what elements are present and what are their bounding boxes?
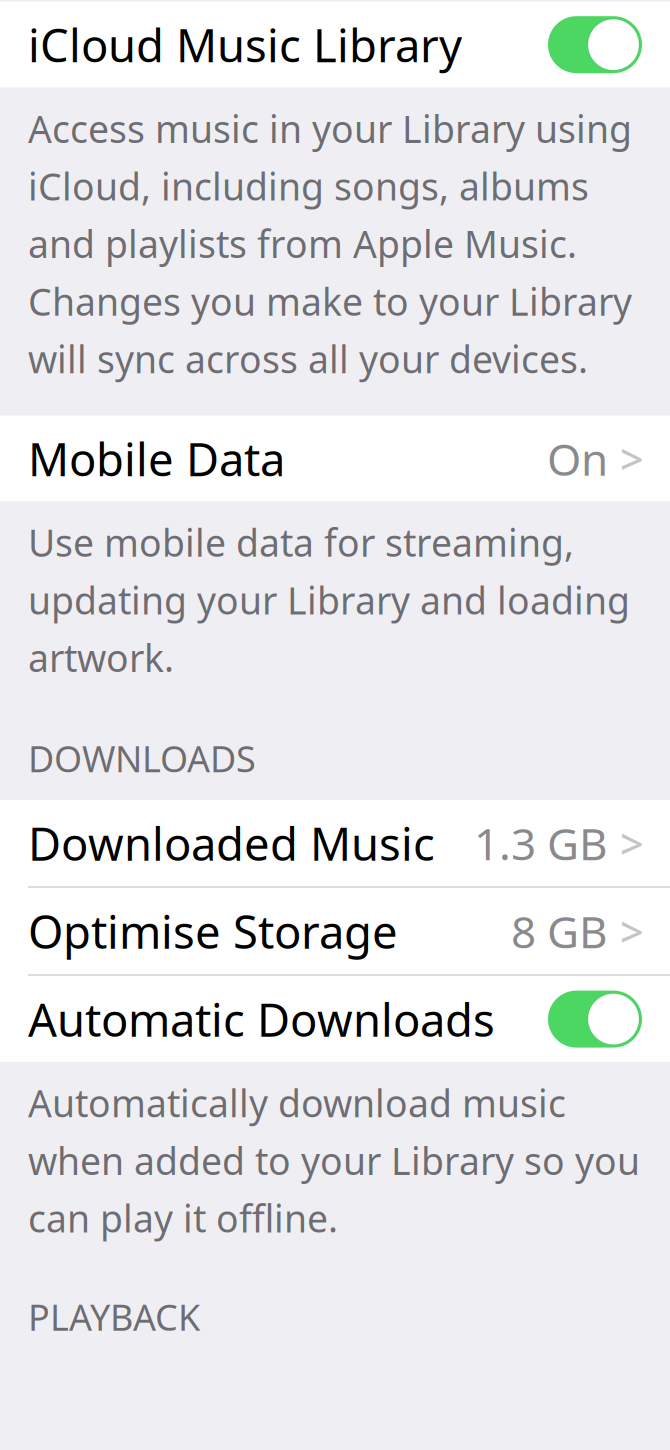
staticText: iCloud Music Library [28, 15, 462, 75]
staticText: PLAYBACK [28, 1293, 200, 1341]
staticText: 1.3 GB [474, 814, 608, 872]
button[interactable]: Mobile Data [0, 416, 670, 502]
staticText: Mobile Data [28, 428, 285, 489]
staticText: Automatically download music when added … [28, 1078, 640, 1243]
staticText: Automatic Downloads [28, 989, 495, 1049]
button[interactable]: iCloud Music Library [0, 2, 670, 88]
staticText: Optimise Storage [28, 901, 398, 961]
staticText: On [547, 429, 608, 488]
staticText: Access music in your Library using iClou… [28, 104, 632, 384]
staticText: Downloaded Music [28, 813, 435, 873]
staticText: > [620, 816, 644, 871]
staticText: DOWNLOADS [28, 734, 256, 782]
staticText: > [620, 904, 644, 959]
staticText: Use mobile data for streaming, updating … [28, 518, 630, 682]
button[interactable]: Automatic Downloads [0, 976, 670, 1062]
button[interactable]: Optimise Storage [0, 888, 670, 974]
staticText: 8 GB [511, 902, 608, 960]
button[interactable]: Downloaded Music [0, 800, 670, 886]
staticText: > [620, 431, 644, 486]
